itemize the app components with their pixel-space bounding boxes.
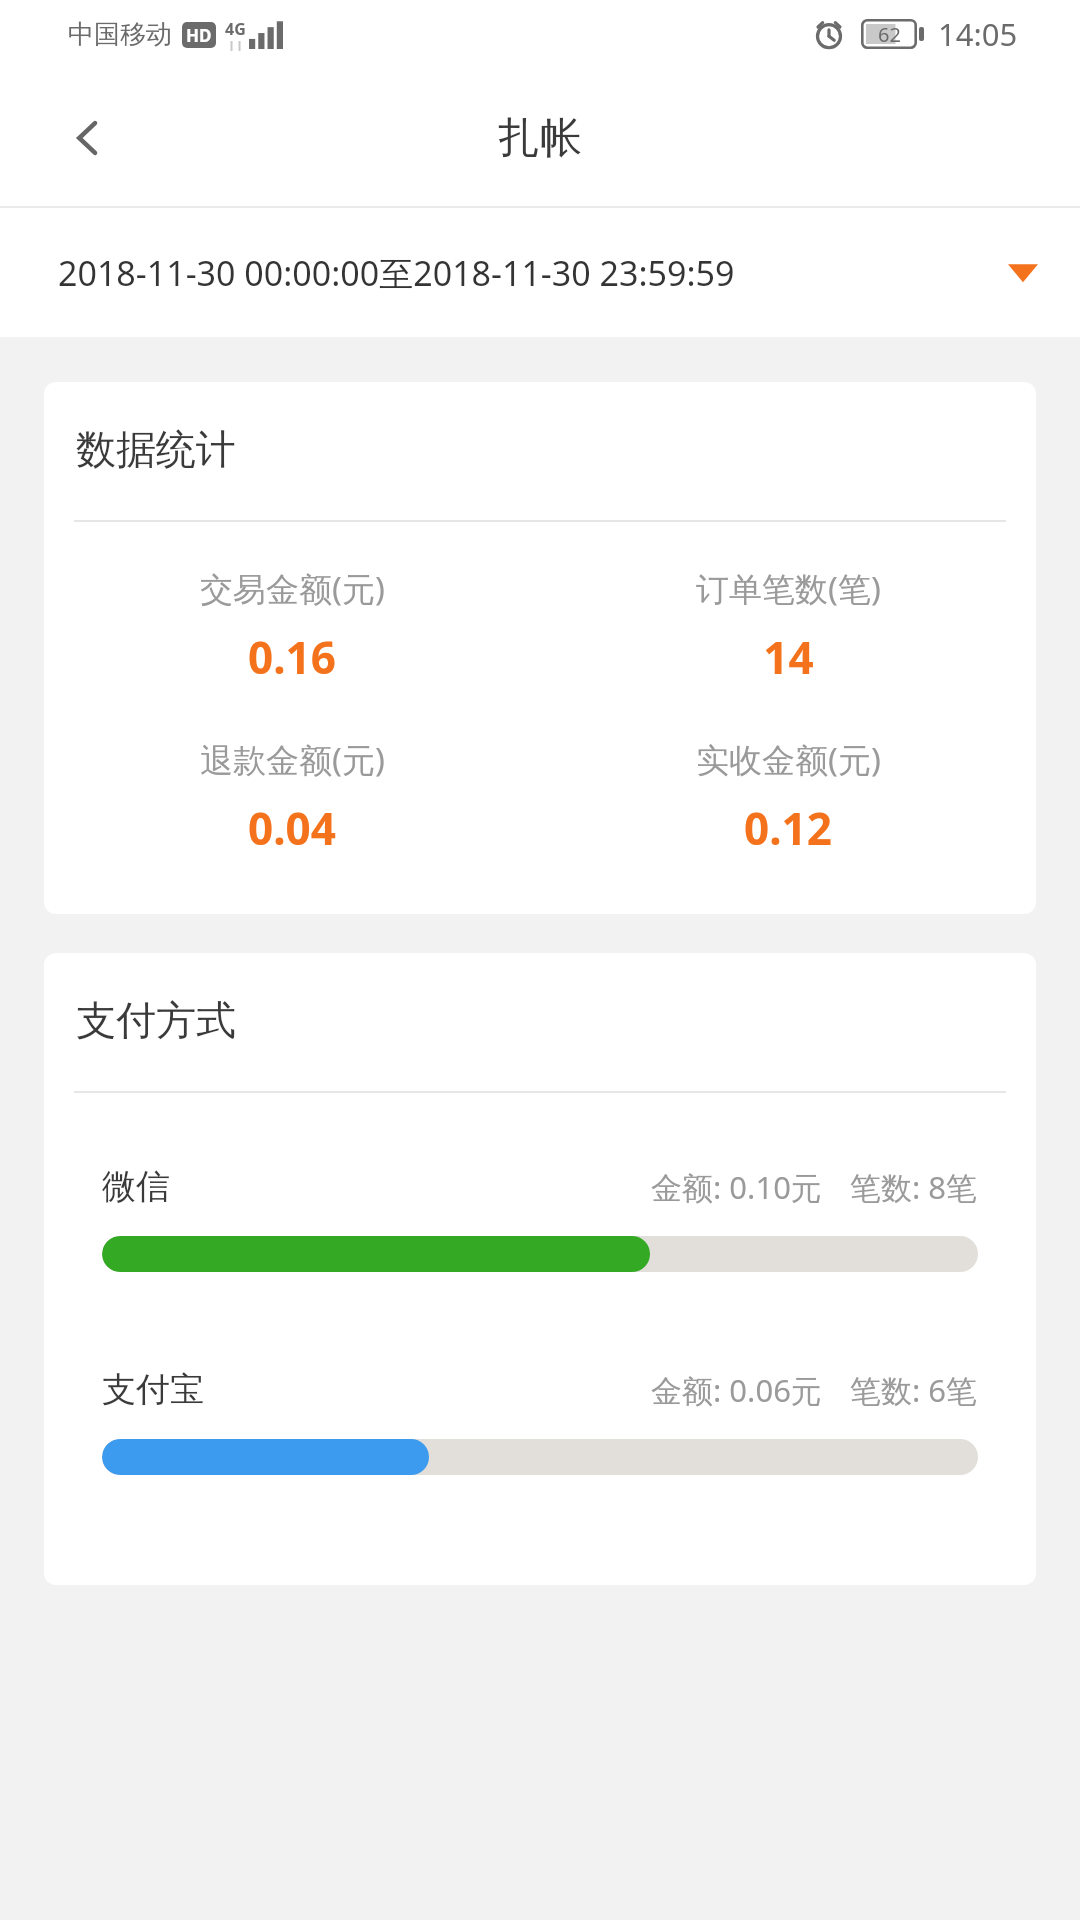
staticText: 交易金额(元) [200, 566, 385, 611]
button[interactable]: 交易金额(元) [44, 566, 540, 687]
staticText: 笔数: 8笔 [850, 1166, 978, 1208]
button[interactable]: Back [40, 90, 136, 186]
staticText: 14 [763, 627, 814, 687]
staticText: 退款金额(元) [200, 737, 385, 782]
staticText: 支付方式 [76, 995, 236, 1045]
staticText: 0.16 [248, 627, 336, 687]
button[interactable]: 退款金额(元) [44, 737, 540, 858]
staticText: HD [186, 24, 212, 47]
staticText: 实收金额(元) [696, 737, 881, 782]
button[interactable]: 实收金额(元) [540, 737, 1036, 858]
staticText: 0.04 [248, 798, 336, 858]
staticText: 4G [225, 18, 246, 40]
staticText: 支付宝 [102, 1368, 204, 1411]
staticText: 微信 [102, 1165, 170, 1208]
staticText: 订单笔数(笔) [696, 566, 881, 611]
staticText: 2018-11-30 00:00:00至2018-11-30 23:59:59 [58, 250, 735, 296]
staticText: 62 [878, 21, 901, 48]
staticText: 14:05 [938, 13, 1018, 55]
staticText: 中国移动 [68, 18, 172, 51]
button[interactable]: 微信 [44, 1165, 1036, 1272]
staticText: 数据统计 [76, 424, 236, 474]
staticText: 金额: 0.06元 [651, 1369, 822, 1411]
button[interactable]: 支付宝 [44, 1368, 1036, 1475]
button[interactable]: 2018-11-30 00:00:00至2018-11-30 23:59:59 [0, 208, 1080, 337]
staticText: 笔数: 6笔 [850, 1369, 978, 1411]
staticText: 0.12 [744, 798, 832, 858]
staticText: 金额: 0.10元 [651, 1166, 822, 1208]
staticText: 扎帐 [498, 112, 582, 165]
button[interactable]: 订单笔数(笔) [540, 566, 1036, 687]
